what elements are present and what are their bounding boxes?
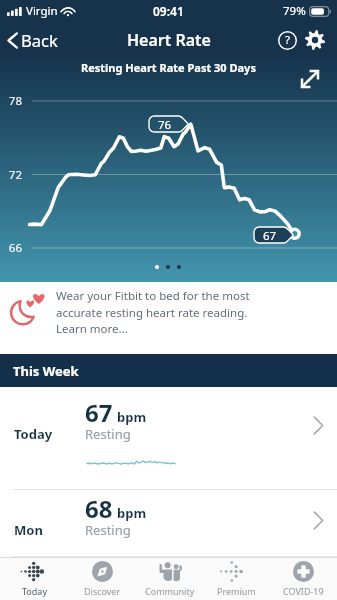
button[interactable]: COVID-19 — [270, 558, 337, 600]
staticText: ? — [285, 32, 290, 48]
staticText: COVID-19 — [283, 585, 324, 597]
staticText: Resting — [85, 425, 131, 443]
staticText: Today — [14, 425, 53, 443]
button[interactable]: Today — [0, 558, 68, 600]
staticText: Resting — [85, 521, 131, 539]
staticText: Resting Heart Rate Past 30 Days — [81, 60, 256, 75]
staticText: Heart Rate — [127, 29, 211, 51]
staticText: 09:41 — [153, 3, 184, 19]
button[interactable]: Mon — [0, 490, 337, 557]
staticText: 67 — [85, 396, 113, 429]
staticText: 79% — [283, 3, 306, 19]
button[interactable]: Community — [136, 558, 203, 600]
staticText: Virgin — [26, 3, 58, 19]
button[interactable]: Settings — [303, 28, 327, 52]
staticText: bpm — [117, 504, 147, 522]
button[interactable]: Premium — [203, 558, 270, 600]
button[interactable]: Help — [275, 28, 299, 52]
button[interactable]: Back — [4, 24, 61, 56]
staticText: Discover — [84, 585, 121, 597]
button[interactable]: Expand chart — [295, 64, 325, 94]
staticText: This Week — [13, 362, 79, 380]
staticText: 76 — [149, 117, 180, 133]
button[interactable]: Discover — [68, 558, 136, 600]
staticText: 68 — [85, 492, 113, 525]
staticText: 67 — [254, 228, 285, 244]
staticText: Community — [145, 585, 195, 597]
staticText: 66 — [2, 240, 22, 256]
staticText: 78 — [2, 93, 22, 109]
staticText: Back — [21, 29, 58, 51]
staticText: Mon — [14, 521, 43, 539]
button[interactable]: Today — [0, 387, 337, 490]
staticText: bpm — [117, 408, 147, 426]
staticText: Wear your Fitbit to bed for the most acc… — [56, 288, 250, 336]
staticText: Today — [22, 585, 47, 597]
staticText: 72 — [2, 167, 22, 183]
staticText: Premium — [217, 585, 256, 597]
